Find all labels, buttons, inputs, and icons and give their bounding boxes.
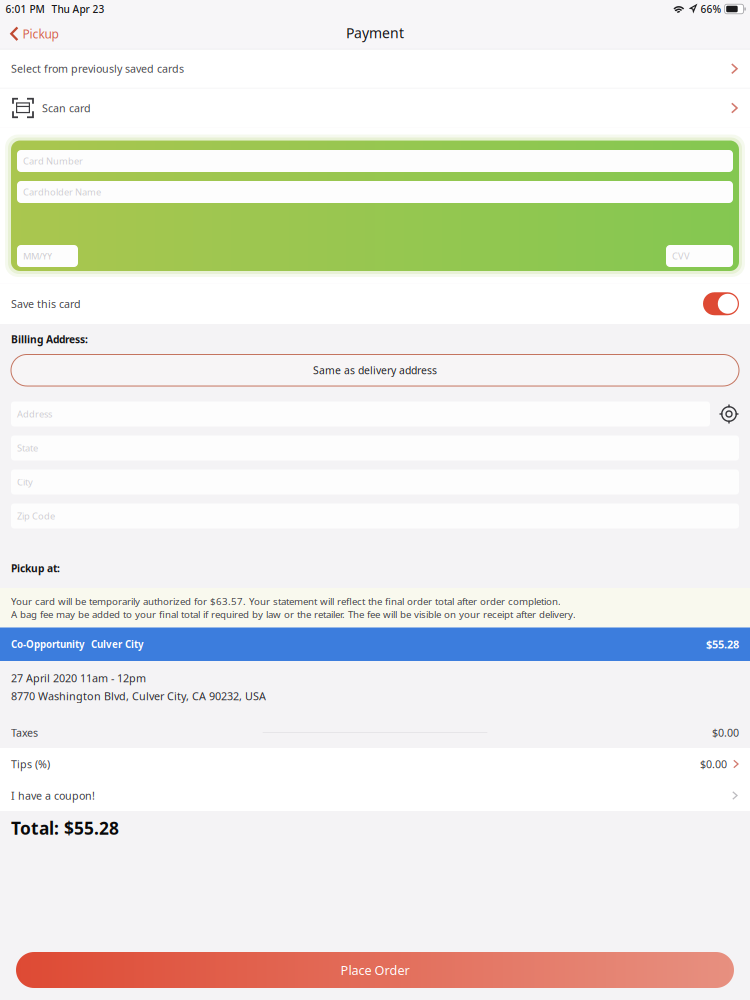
button[interactable]: I have a coupon!	[0, 780, 750, 811]
staticText: 6:01 PM	[5, 2, 44, 16]
staticText: City	[17, 476, 33, 488]
staticText: $0.00	[700, 757, 727, 771]
staticText: I have a coupon!	[11, 788, 95, 803]
staticText: Billing Address:	[11, 332, 88, 346]
staticText: 8770 Washington Blvd, Culver City, CA 90…	[11, 689, 266, 703]
staticText: Total: $55.28	[11, 816, 119, 840]
staticText: State	[17, 442, 38, 454]
button[interactable]: Scan card	[0, 88, 750, 127]
staticText: Select from previously saved cards	[11, 61, 184, 76]
button[interactable]: Select from previously saved cards	[0, 49, 750, 88]
button[interactable]: Use current location	[719, 404, 739, 424]
staticText: Card Number	[23, 155, 83, 167]
staticText: Payment	[346, 23, 404, 42]
staticText: 27 April 2020 11am - 12pm	[11, 671, 146, 685]
staticText: Cardholder Name	[23, 186, 101, 198]
staticText: MM/YY	[23, 250, 52, 262]
staticText: Taxes	[11, 725, 38, 740]
staticText: 66%	[701, 2, 722, 16]
staticText: Co-Opportunity Culver City	[11, 638, 144, 651]
staticText: Tips (%)	[11, 757, 50, 771]
staticText: $55.28	[706, 637, 739, 652]
staticText: Your card will be temporarily authorized…	[11, 595, 561, 608]
button[interactable]: Tips (%)	[0, 748, 750, 780]
staticText: A bag fee may be added to your final tot…	[11, 608, 576, 621]
button[interactable]: Same as delivery address	[0, 354, 750, 386]
staticText: CVV	[672, 250, 690, 262]
staticText: Zip Code	[17, 510, 55, 522]
button[interactable]: Save this card	[703, 292, 739, 315]
staticText: Pickup at:	[11, 561, 60, 575]
staticText: Same as delivery address	[313, 363, 437, 377]
staticText: Address	[17, 408, 52, 420]
staticText: Pickup	[23, 26, 59, 42]
staticText: Thu Apr 23	[51, 2, 104, 16]
staticText: $0.00	[712, 725, 739, 740]
button[interactable]: Pickup	[0, 21, 59, 47]
button[interactable]: Place Order	[0, 952, 750, 1000]
staticText: Save this card	[11, 296, 81, 311]
staticText: Scan card	[42, 101, 91, 115]
staticText: Place Order	[340, 961, 409, 979]
